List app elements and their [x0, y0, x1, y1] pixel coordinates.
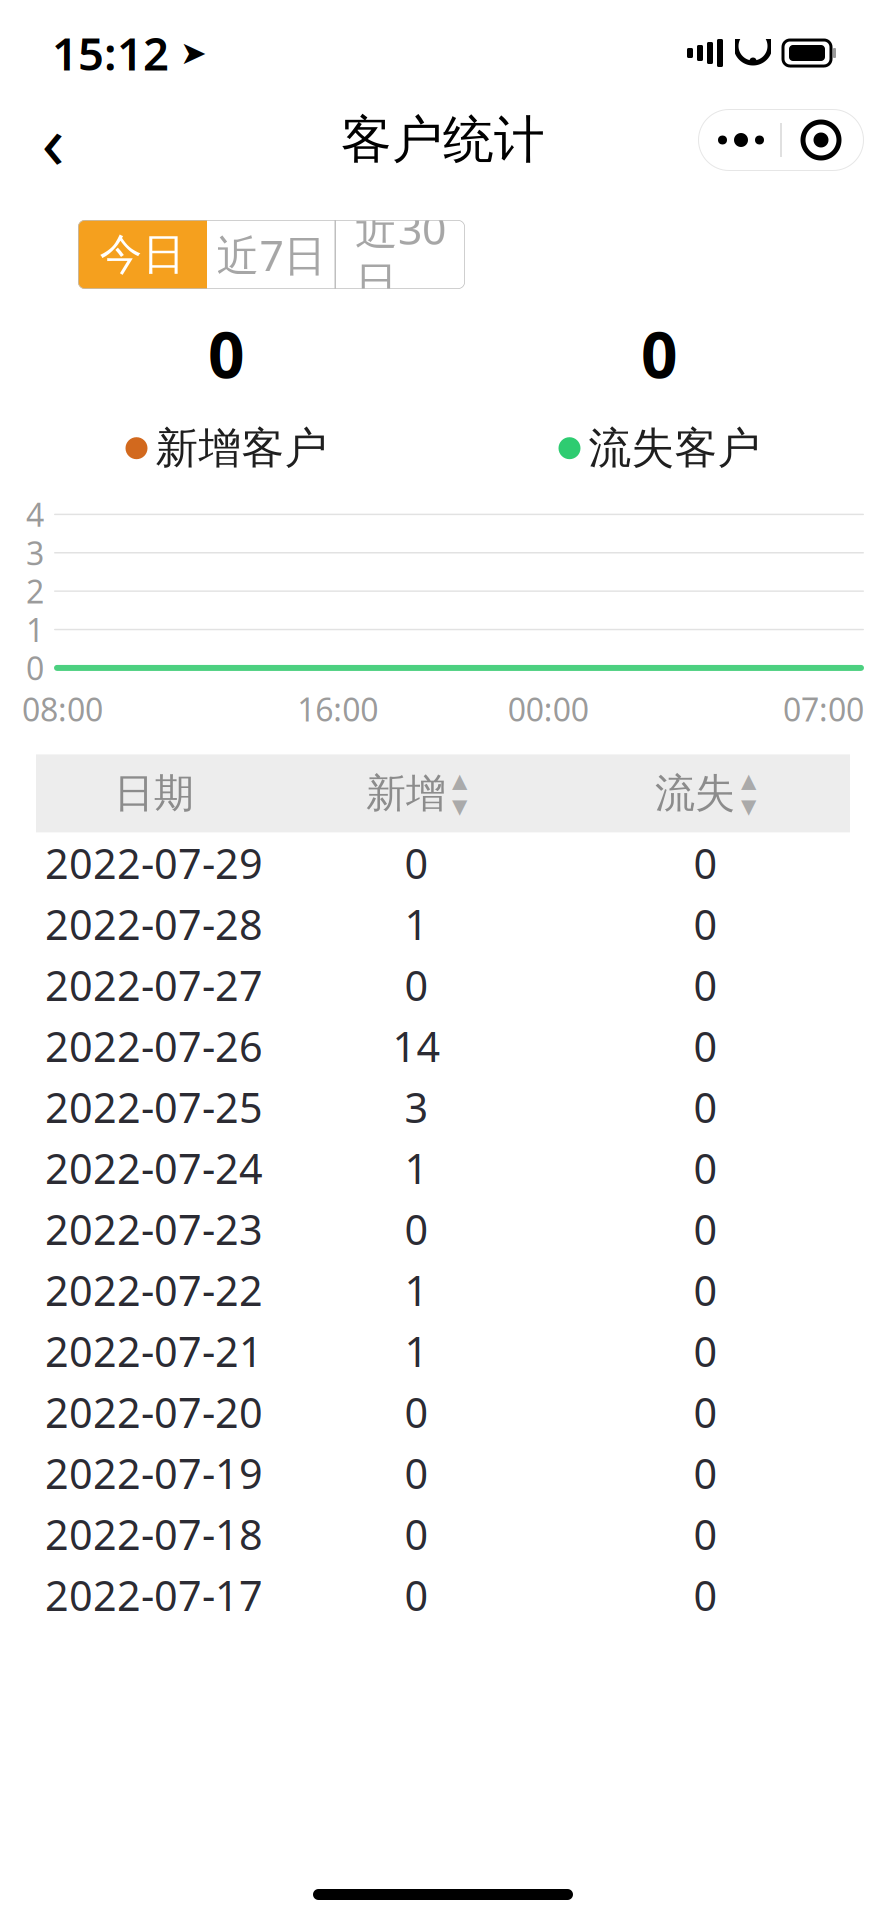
- staticText: 2022-07-21: [45, 1323, 263, 1378]
- staticText: 0: [693, 1567, 717, 1622]
- staticText: 今日: [99, 228, 185, 281]
- staticText: 2022-07-17: [45, 1567, 263, 1622]
- staticText: 07:00: [783, 688, 864, 730]
- staticText: 流失客户: [588, 422, 760, 474]
- staticText: 流失: [655, 769, 735, 818]
- staticText: 0: [404, 1201, 428, 1256]
- staticText: 近30日: [355, 200, 446, 309]
- staticText: 2022-07-18: [45, 1506, 263, 1561]
- staticText: 2022-07-27: [45, 957, 263, 1012]
- staticText: 日期: [114, 769, 194, 818]
- button[interactable]: 近30日: [336, 220, 465, 289]
- staticText: ➤: [169, 35, 207, 71]
- staticText: 3: [404, 1079, 428, 1134]
- staticText: ‹: [41, 90, 64, 190]
- staticText: ▲: [452, 769, 467, 792]
- button[interactable]: 近7日: [207, 220, 336, 289]
- staticText: 1: [404, 1262, 428, 1317]
- staticText: 16:00: [297, 688, 378, 730]
- staticText: 1: [404, 1140, 428, 1195]
- staticText: 3: [26, 531, 44, 574]
- staticText: 0: [693, 1506, 717, 1561]
- staticText: 0: [208, 311, 245, 396]
- staticText: 新增客户: [155, 422, 327, 474]
- staticText: 0: [693, 957, 717, 1012]
- button[interactable]: 今日: [78, 220, 207, 289]
- staticText: ▼: [741, 795, 756, 818]
- staticText: 0: [693, 1018, 717, 1073]
- staticText: 0: [641, 311, 678, 396]
- staticText: 0: [693, 1140, 717, 1195]
- button[interactable]: Close: [782, 111, 860, 169]
- staticText: 14: [392, 1018, 440, 1073]
- staticText: 2022-07-23: [45, 1201, 263, 1256]
- button[interactable]: More: [702, 111, 780, 169]
- staticText: 0: [404, 1506, 428, 1561]
- staticText: 4: [26, 493, 44, 536]
- staticText: 0: [693, 896, 717, 951]
- staticText: 0: [693, 1445, 717, 1500]
- staticText: 2022-07-19: [45, 1445, 263, 1500]
- button[interactable]: 流失: [561, 754, 850, 832]
- staticText: 客户统计: [341, 109, 545, 171]
- button[interactable]: 新增: [272, 754, 561, 832]
- staticText: 0: [693, 1079, 717, 1134]
- staticText: 08:00: [22, 688, 103, 730]
- staticText: 15:12: [52, 23, 169, 83]
- staticText: 0: [693, 835, 717, 890]
- staticText: 0: [404, 957, 428, 1012]
- staticText: 近7日: [216, 226, 326, 283]
- staticText: 0: [26, 647, 44, 689]
- staticText: 1: [26, 608, 44, 651]
- staticText: 1: [404, 896, 428, 951]
- staticText: 2022-07-24: [45, 1140, 263, 1195]
- staticText: 2022-07-22: [45, 1262, 263, 1317]
- staticText: 0: [693, 1262, 717, 1317]
- staticText: 00:00: [508, 688, 589, 730]
- staticText: 0: [404, 1445, 428, 1500]
- staticText: 新增: [366, 769, 446, 818]
- staticText: 0: [404, 1384, 428, 1439]
- staticText: 1: [404, 1323, 428, 1378]
- staticText: 2022-07-29: [45, 835, 263, 890]
- staticText: 2: [26, 570, 44, 612]
- staticText: ▼: [452, 795, 467, 818]
- staticText: 2022-07-28: [45, 896, 263, 951]
- staticText: 2022-07-20: [45, 1384, 263, 1439]
- staticText: 0: [693, 1201, 717, 1256]
- staticText: 0: [404, 835, 428, 890]
- button[interactable]: Back: [16, 103, 90, 177]
- staticText: 0: [404, 1567, 428, 1622]
- staticText: 2022-07-25: [45, 1079, 263, 1134]
- staticText: 2022-07-26: [45, 1018, 263, 1073]
- staticText: ▲: [741, 769, 756, 792]
- staticText: 0: [693, 1384, 717, 1439]
- staticText: 0: [693, 1323, 717, 1378]
